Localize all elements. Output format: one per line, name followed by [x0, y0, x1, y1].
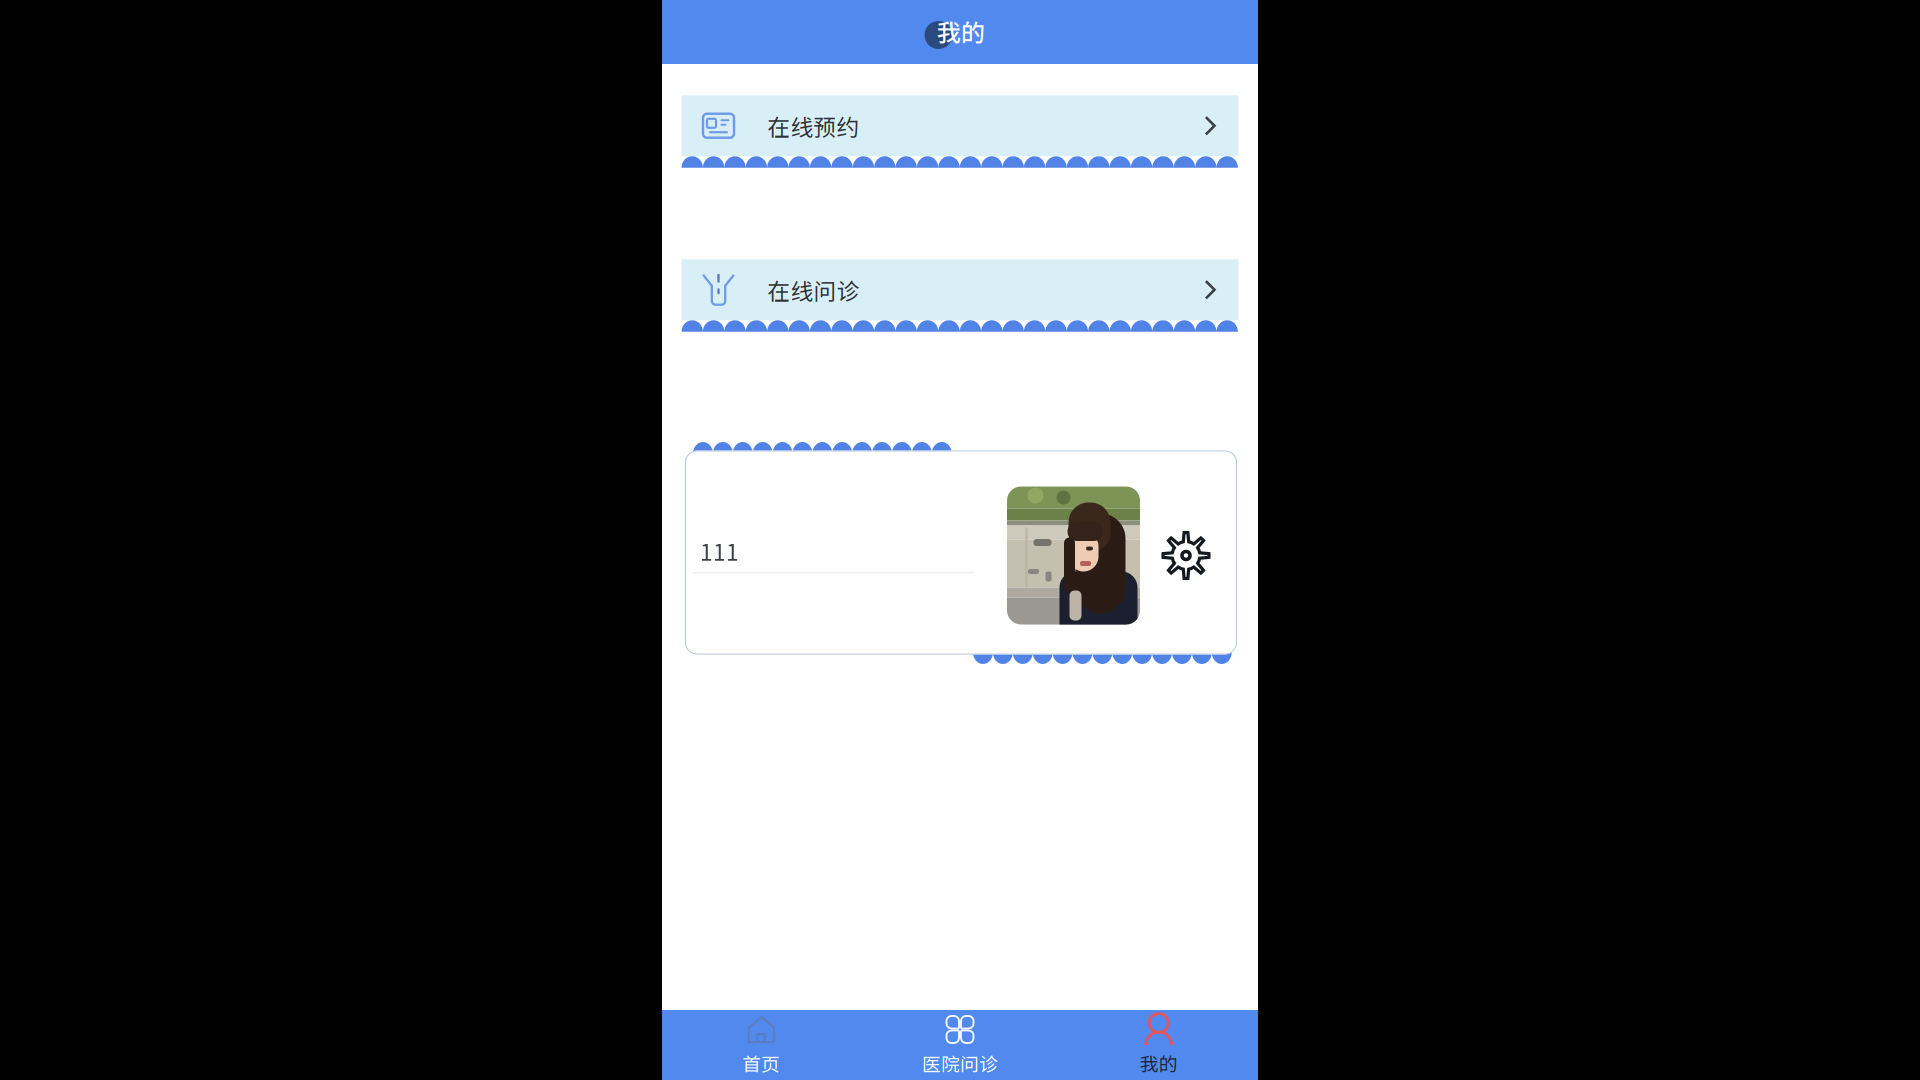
staticText: 111: [700, 534, 739, 567]
button[interactable]: 在线预约: [681, 96, 1238, 167]
button[interactable]: 111: [693, 450, 975, 654]
staticText: 在线问诊: [767, 273, 859, 306]
button[interactable]: 医院问诊: [861, 1010, 1059, 1080]
staticText: 首页: [742, 1049, 780, 1076]
staticText: 医院问诊: [922, 1049, 998, 1076]
staticText: 在线预约: [767, 109, 859, 142]
button[interactable]: Settings: [1160, 526, 1212, 578]
button[interactable]: 我的: [1059, 1010, 1258, 1080]
staticText: 我的: [1140, 1049, 1178, 1076]
button[interactable]: 首页: [662, 1010, 861, 1080]
button[interactable]: Profile photo: [1007, 483, 1140, 621]
button[interactable]: 在线问诊: [681, 260, 1238, 331]
staticText: 我的: [937, 14, 985, 48]
